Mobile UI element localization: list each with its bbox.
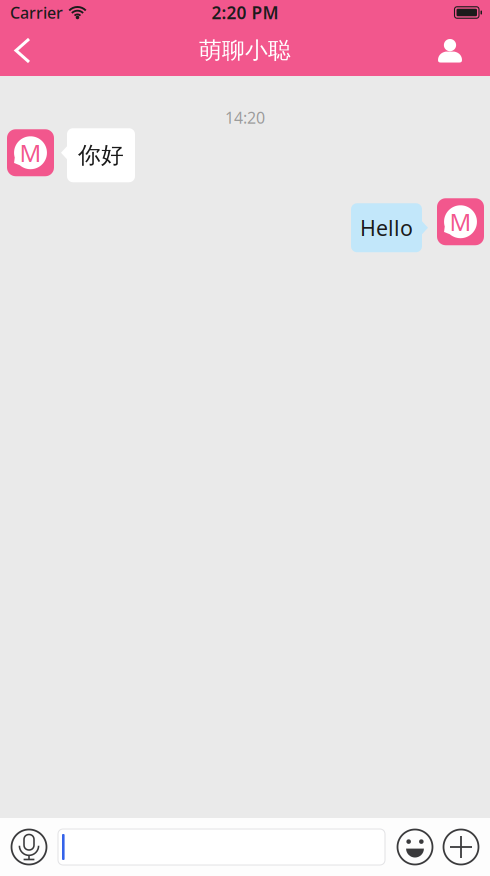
button[interactable]: More [438,819,484,875]
staticText: 萌聊小聪 [199,37,291,64]
staticText: M [449,206,471,238]
staticText: Carrier [10,2,63,23]
staticText: M [19,137,41,169]
staticText: Hello [360,214,413,242]
button[interactable]: Voice message [6,819,52,875]
button[interactable]: Back [0,27,45,74]
button[interactable]: Emoji [392,819,438,875]
button[interactable]: Profile [422,26,490,74]
staticText: 2:20 PM [211,1,278,24]
staticText: 14:20 [225,107,265,128]
staticText: 你好 [78,141,124,169]
